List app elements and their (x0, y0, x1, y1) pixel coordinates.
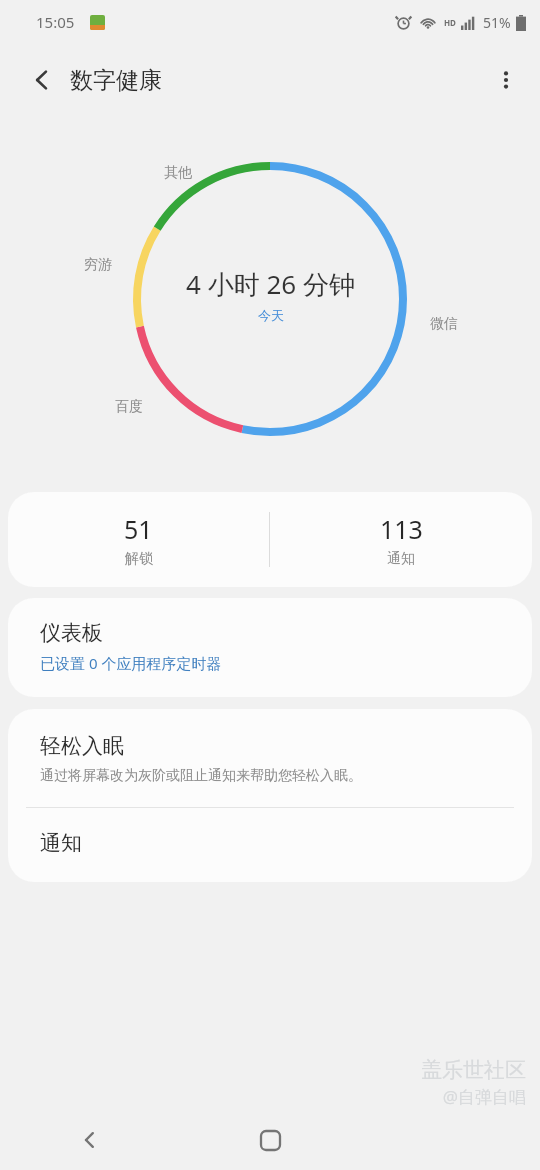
button[interactable]: 仪表板 (8, 598, 532, 697)
staticText: @自弹自唱 (442, 1085, 526, 1108)
button[interactable]: 51 (8, 492, 269, 587)
button[interactable]: Back (0, 1110, 180, 1170)
staticText: HD (444, 17, 456, 28)
button[interactable]: 轻松入眠 (8, 709, 532, 807)
staticText: 仪表板 (40, 620, 103, 646)
staticText: 其他 (164, 164, 192, 182)
staticText: 今天 (258, 307, 284, 323)
button[interactable]: 113 (270, 492, 532, 587)
button[interactable]: Home (180, 1110, 360, 1170)
staticText: 4 小时 26 分钟 (186, 266, 355, 302)
staticText: 113 (380, 512, 423, 546)
staticText: 通过将屏幕改为灰阶或阻止通知来帮助您轻松入眠。 (40, 767, 362, 785)
button[interactable]: More options (480, 54, 532, 106)
staticText: 15:05 (36, 12, 75, 32)
staticText: 微信 (430, 315, 458, 333)
staticText: 轻松入眠 (40, 733, 124, 759)
staticText: 已设置 0 个应用程序定时器 (40, 653, 222, 673)
staticText: 通知 (40, 830, 82, 856)
staticText: 通知 (387, 550, 415, 568)
staticText: 数字健康 (70, 66, 162, 95)
staticText: 51% (483, 13, 511, 32)
staticText: 穷游 (84, 256, 112, 274)
button[interactable]: 通知 (8, 808, 532, 882)
staticText: 解锁 (125, 550, 153, 568)
button[interactable]: Back (18, 56, 66, 104)
staticText: 盖乐世社区 (421, 1057, 526, 1083)
staticText: 百度 (115, 398, 143, 416)
staticText: 51 (124, 512, 153, 546)
